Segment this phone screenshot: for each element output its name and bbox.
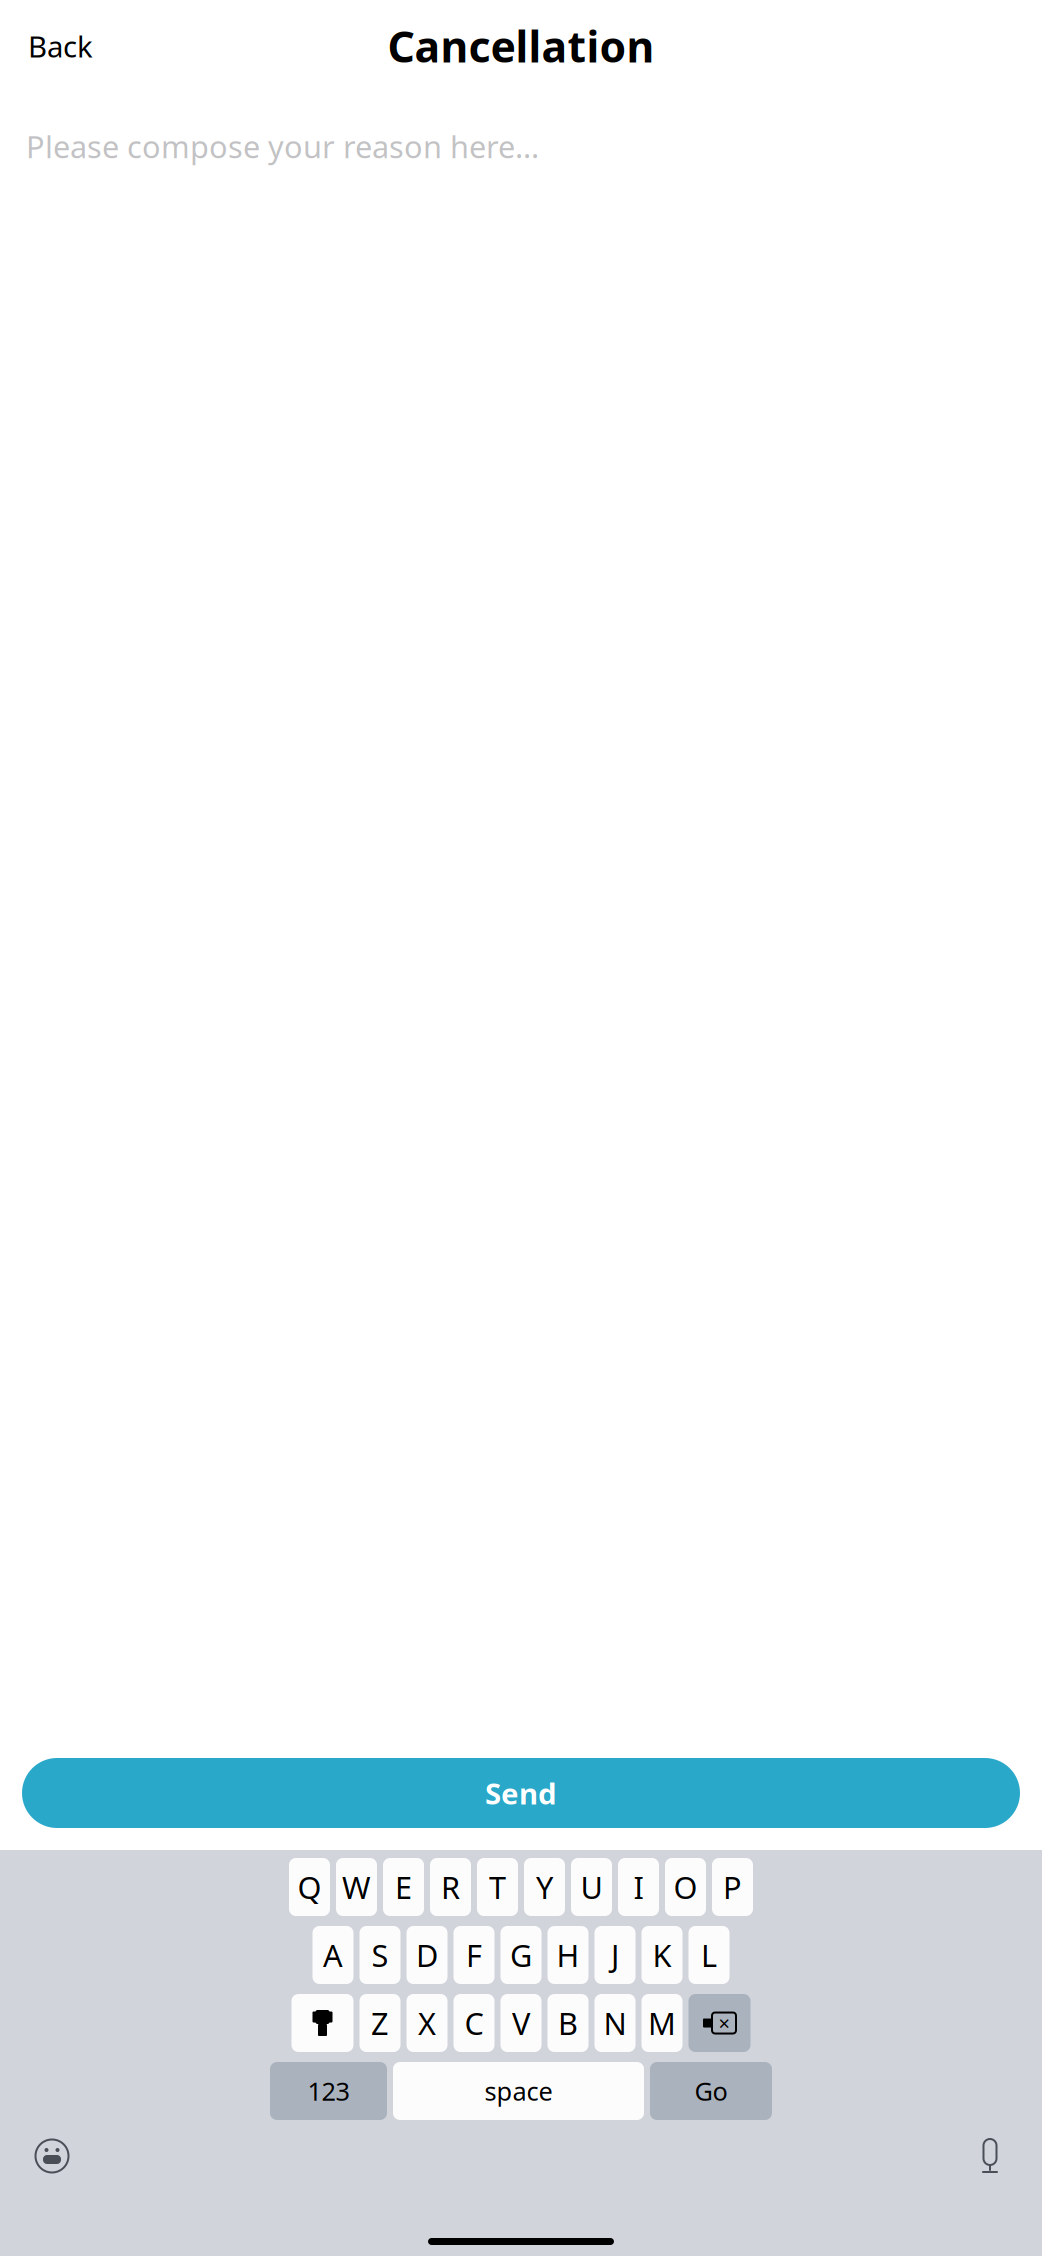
button[interactable]: Y [524,1858,565,1916]
staticText: N [603,2003,626,2043]
button[interactable]: Back [18,20,103,71]
button[interactable]: space [393,2062,644,2120]
button[interactable]: Emoji [28,2132,76,2180]
button[interactable]: Z [359,1994,400,2052]
staticText: M [648,2003,676,2043]
staticText: H [556,1935,579,1975]
button[interactable]: Delete [688,1994,750,2052]
button[interactable]: Go [650,2062,772,2120]
staticText: B [558,2003,578,2043]
staticText: F [466,1935,482,1975]
staticText: W [342,1867,371,1907]
staticText: E [395,1867,412,1907]
staticText: G [510,1935,532,1975]
staticText: T [489,1867,506,1907]
button[interactable]: T [477,1858,518,1916]
button[interactable]: K [641,1926,682,1984]
staticText: 123 [307,2074,349,2108]
button[interactable]: B [547,1994,588,2052]
button[interactable]: J [594,1926,635,1984]
staticText: D [416,1935,438,1975]
button[interactable]: P [712,1858,753,1916]
staticText: P [723,1867,742,1907]
button[interactable]: V [500,1994,541,2052]
button[interactable]: M [641,1994,682,2052]
button[interactable]: Q [289,1858,330,1916]
staticText: V [512,2003,530,2043]
button[interactable]: C [453,1994,494,2052]
staticText: Y [536,1867,553,1907]
button[interactable]: D [406,1926,447,1984]
button[interactable]: I [618,1858,659,1916]
staticText: Back [28,26,93,65]
button[interactable]: Send [22,1758,1020,1828]
button[interactable]: F [453,1926,494,1984]
button[interactable]: Dictate [966,2132,1014,2180]
staticText: Cancellation [387,18,654,74]
staticText: R [441,1867,460,1907]
button[interactable]: G [500,1926,541,1984]
button[interactable]: H [547,1926,588,1984]
staticText: Send [485,1773,557,1812]
staticText: I [633,1867,643,1907]
staticText: S [371,1935,388,1975]
staticText: J [611,1935,619,1975]
staticText: O [673,1867,697,1907]
button[interactable]: N [594,1994,635,2052]
staticText: Z [371,2003,389,2043]
staticText: Go [694,2074,727,2108]
button[interactable]: W [336,1858,377,1916]
button[interactable]: O [665,1858,706,1916]
staticText: space [484,2074,552,2108]
staticText: C [464,2003,483,2043]
button[interactable]: R [430,1858,471,1916]
button[interactable]: S [359,1926,400,1984]
staticText: A [323,1935,343,1975]
staticText: K [652,1935,671,1975]
button[interactable]: Shift [291,1994,353,2052]
button[interactable]: A [312,1926,353,1984]
staticText: U [580,1867,602,1907]
staticText: X [418,2003,436,2043]
staticText: Q [297,1867,321,1907]
button[interactable]: L [688,1926,729,1984]
staticText: L [701,1935,717,1975]
button[interactable]: U [571,1858,612,1916]
button[interactable]: E [383,1858,424,1916]
button[interactable]: 123 [270,2062,387,2120]
staticText: × [718,2010,729,2036]
staticText: Please compose your reason here... [26,126,539,167]
button[interactable]: X [406,1994,447,2052]
